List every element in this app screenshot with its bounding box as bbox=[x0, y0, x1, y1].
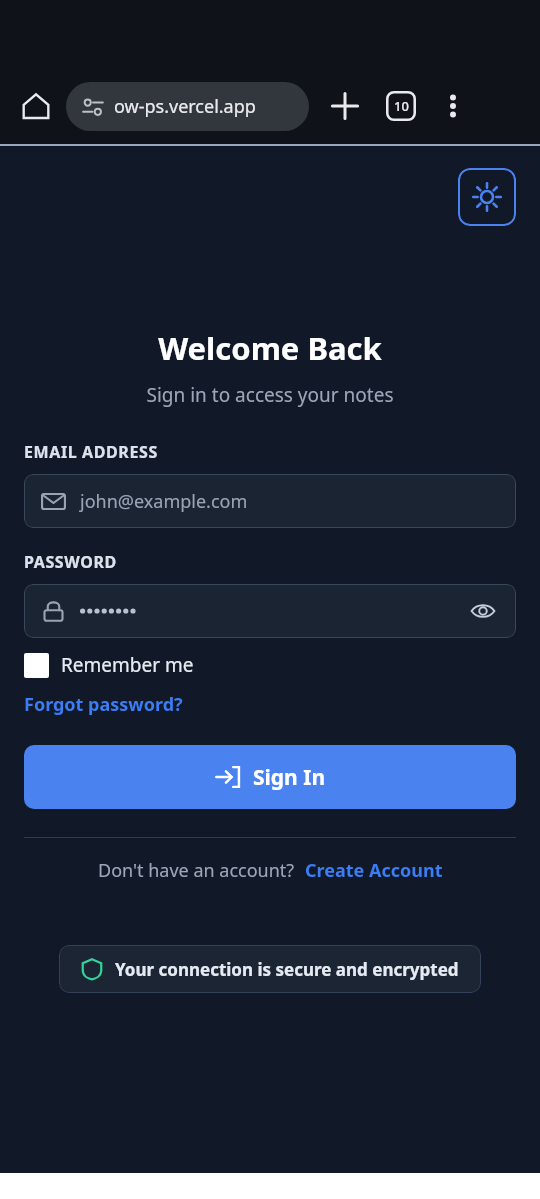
staticText: ow-ps.vercel.app bbox=[114, 94, 256, 119]
button[interactable]: Show password bbox=[24, 584, 516, 638]
staticText: Forgot password? bbox=[24, 692, 183, 717]
button[interactable]: Tabs, 10 open bbox=[379, 84, 423, 128]
button[interactable]: Create Account bbox=[305, 858, 443, 883]
button[interactable]: Forgot password? bbox=[24, 692, 183, 717]
staticText: Remember me bbox=[61, 652, 194, 678]
staticText: Your connection is secure and encrypted bbox=[115, 958, 459, 981]
button[interactable]: Show password bbox=[466, 594, 500, 628]
button[interactable]: Remember me bbox=[24, 652, 194, 678]
staticText: Sign In bbox=[253, 763, 326, 792]
button[interactable]: Sign In bbox=[24, 745, 516, 809]
staticText: Create Account bbox=[305, 858, 443, 883]
staticText: 10 bbox=[394, 97, 409, 115]
staticText: Welcome Back bbox=[0, 327, 540, 369]
staticText: PASSWORD bbox=[24, 551, 117, 573]
staticText: EMAIL ADDRESS bbox=[24, 441, 158, 463]
staticText: Don't have an account? bbox=[98, 858, 295, 883]
staticText: Sign in to access your notes bbox=[0, 382, 540, 408]
button[interactable]: Home bbox=[14, 84, 58, 128]
button[interactable]: john@example.com bbox=[24, 474, 516, 528]
staticText: john@example.com bbox=[80, 489, 248, 514]
button[interactable]: ow-ps.vercel.app bbox=[66, 82, 309, 131]
button[interactable]: More options bbox=[433, 86, 473, 126]
button[interactable]: New tab bbox=[323, 84, 367, 128]
button[interactable]: Toggle theme bbox=[458, 168, 516, 226]
